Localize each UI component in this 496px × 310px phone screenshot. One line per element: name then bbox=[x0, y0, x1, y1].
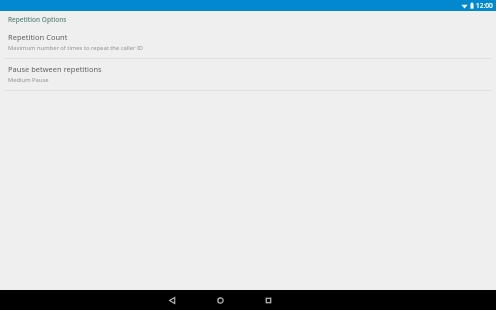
staticText: 12:00 bbox=[476, 1, 493, 10]
button[interactable]: Repetition Count bbox=[0, 27, 496, 58]
button[interactable]: Home bbox=[207, 290, 233, 310]
staticText: Medium Pause bbox=[8, 76, 49, 84]
staticText: Maximum number of times to repeat the ca… bbox=[8, 44, 144, 52]
button[interactable]: Pause between repetitions bbox=[0, 59, 496, 90]
staticText: Repetition Options bbox=[8, 15, 67, 24]
staticText: Repetition Count bbox=[8, 32, 68, 42]
staticText: Pause between repetitions bbox=[8, 64, 102, 74]
button[interactable]: Recent apps bbox=[255, 290, 281, 310]
button[interactable]: Back bbox=[159, 290, 185, 310]
